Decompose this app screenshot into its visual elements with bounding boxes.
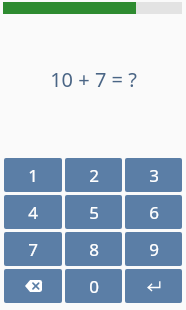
staticText: 9: [149, 238, 159, 261]
button[interactable]: 4: [4, 195, 62, 229]
staticText: 5: [89, 201, 99, 224]
staticText: 0: [89, 275, 99, 298]
button[interactable]: 2: [65, 158, 122, 192]
button[interactable]: 1: [4, 158, 62, 192]
staticText: 1: [28, 164, 38, 187]
button[interactable]: 7: [4, 232, 62, 266]
staticText: 6: [149, 201, 159, 224]
button[interactable]: Enter: [125, 269, 182, 303]
staticText: 4: [28, 201, 38, 224]
button[interactable]: 9: [125, 232, 182, 266]
staticText: 10 + 7 = ?: [50, 66, 137, 93]
button[interactable]: 6: [125, 195, 182, 229]
button[interactable]: 3: [125, 158, 182, 192]
button[interactable]: 5: [65, 195, 122, 229]
button[interactable]: 0: [65, 269, 122, 303]
staticText: 2: [89, 164, 99, 187]
button[interactable]: 8: [65, 232, 122, 266]
staticText: 7: [28, 238, 38, 261]
staticText: 8: [89, 238, 99, 261]
button[interactable]: Backspace: [4, 269, 62, 303]
staticText: 3: [149, 164, 159, 187]
